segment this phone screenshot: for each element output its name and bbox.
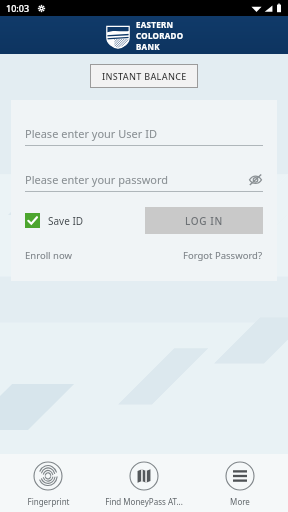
staticText: EASTERN xyxy=(136,19,174,30)
staticText: Please enter your password xyxy=(25,172,169,187)
button[interactable]: LOG IN xyxy=(145,207,263,234)
button[interactable]: Fingerprint login xyxy=(0,454,96,512)
staticText: LOG IN xyxy=(185,214,223,228)
button[interactable]: Please enter your User ID xyxy=(25,126,263,146)
staticText: More xyxy=(230,496,250,507)
button[interactable]: Enroll now xyxy=(25,249,72,262)
staticText: COLORADO xyxy=(136,30,184,41)
other: Show password xyxy=(248,172,263,187)
staticText: Find MoneyPass AT... xyxy=(105,496,183,507)
button[interactable]: Save ID xyxy=(25,213,84,228)
staticText: Save ID xyxy=(48,214,84,228)
button[interactable]: Please enter your password xyxy=(25,172,263,192)
staticText: 10:03 xyxy=(6,2,30,14)
other: Fingerprint login xyxy=(33,461,63,491)
button[interactable]: Forgot Password? xyxy=(183,249,263,262)
staticText: Fingerprint xyxy=(27,496,70,507)
staticText: Please enter your User ID xyxy=(25,126,157,141)
staticText: BANK xyxy=(136,41,160,52)
staticText: Enroll now xyxy=(25,249,72,262)
button[interactable]: More options xyxy=(192,454,288,512)
staticText: INSTANT BALANCE xyxy=(102,70,187,82)
button[interactable]: INSTANT BALANCE xyxy=(90,64,198,88)
staticText: Forgot Password? xyxy=(183,249,263,262)
other: Find MoneyPass ATM xyxy=(129,461,159,491)
button[interactable]: Find MoneyPass ATM xyxy=(96,454,192,512)
other: More options xyxy=(225,461,255,491)
